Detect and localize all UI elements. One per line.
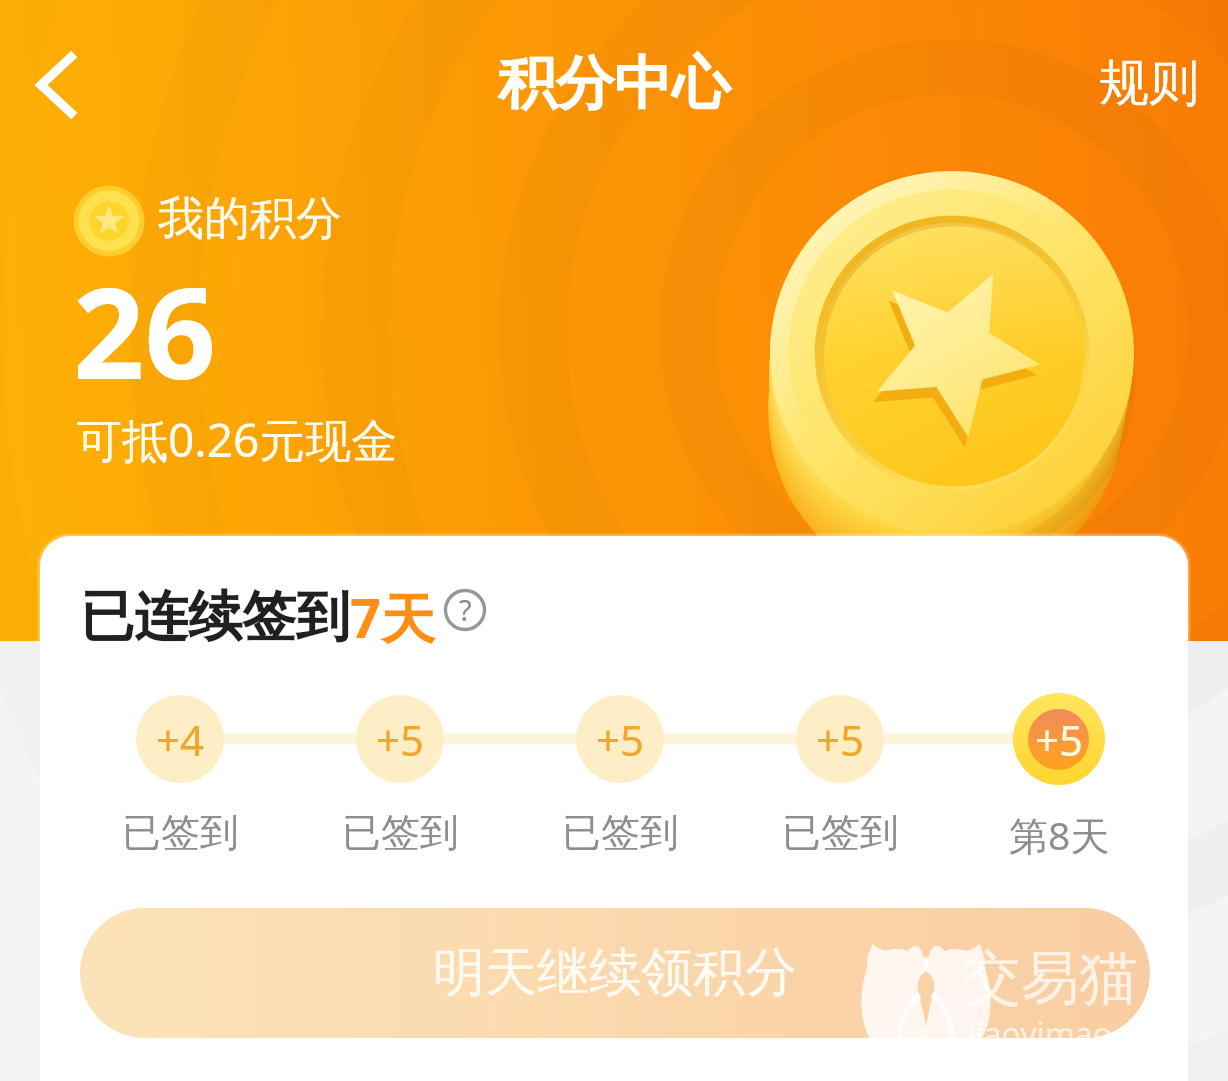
staticText: +5 <box>376 711 425 768</box>
button[interactable]: 积分规则说明 <box>437 582 493 638</box>
staticText: 26 <box>73 245 216 415</box>
staticText: +4 <box>156 711 205 768</box>
staticText: 7天 <box>350 580 435 654</box>
button[interactable]: 明天继续领积分 <box>80 908 1150 1038</box>
staticText: 规则 <box>1099 52 1199 115</box>
button[interactable] <box>1001 681 1117 841</box>
staticText: 交易猫 <box>963 942 1137 1015</box>
staticText: ? <box>459 590 472 629</box>
staticText: +5 <box>816 711 865 768</box>
staticText: 第8天 <box>1009 808 1110 856</box>
button[interactable] <box>782 681 898 841</box>
staticText: 已连续签到 <box>80 583 350 651</box>
staticText: 可抵0.26元现金 <box>76 408 398 471</box>
button[interactable]: 规则 <box>1075 30 1228 137</box>
button[interactable] <box>342 681 458 841</box>
button[interactable]: Back <box>7 37 103 133</box>
staticText: 积分中心 <box>498 47 730 120</box>
staticText: 已签到 <box>782 808 899 856</box>
staticText: 明天继续领积分 <box>433 940 797 1006</box>
staticText: +5 <box>1035 711 1084 768</box>
staticText: +5 <box>596 711 645 768</box>
staticText: 已签到 <box>122 808 239 856</box>
button[interactable] <box>122 681 238 841</box>
staticText: 已签到 <box>562 808 679 856</box>
staticText: 已签到 <box>342 808 459 856</box>
button[interactable] <box>562 681 678 841</box>
staticText: 我的积分 <box>158 190 342 248</box>
staticText: jiaoyimao <box>967 1012 1112 1056</box>
